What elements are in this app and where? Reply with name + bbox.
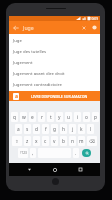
button[interactable]: p: [92, 112, 99, 122]
staticText: q: [13, 114, 16, 121]
button[interactable]: Jugement contradictoire: [9, 78, 100, 89]
staticText: LIVRE DISPONIBLE SUR AMAZON: [31, 94, 88, 99]
button[interactable]: ,: [30, 148, 36, 158]
staticText: 10:09: [90, 17, 98, 21]
staticText: c: [44, 138, 47, 145]
staticText: a: [15, 93, 18, 100]
staticText: Juge des tutelles: [13, 48, 47, 54]
button[interactable]: n: [69, 136, 76, 146]
button[interactable]: Jugement avant dire droit: [9, 67, 100, 78]
staticText: f: [45, 126, 47, 133]
button[interactable]: f: [42, 124, 49, 134]
button[interactable]: o: [83, 112, 90, 122]
button[interactable]: j: [69, 124, 76, 134]
button[interactable]: Juge: [9, 34, 100, 45]
staticText: Jugement contradictoire: [13, 81, 62, 87]
staticText: ,: [32, 150, 34, 157]
button[interactable]: r: [38, 112, 45, 122]
staticText: g: [53, 126, 56, 133]
button[interactable]: q: [11, 112, 18, 122]
button[interactable]: Clear search: [78, 21, 89, 34]
button[interactable]: m: [78, 136, 85, 146]
staticText: d: [35, 126, 38, 133]
button[interactable]: s: [24, 124, 31, 134]
staticText: l: [90, 126, 92, 133]
button[interactable]: y: [56, 112, 63, 122]
button[interactable]: Back: [9, 21, 23, 34]
staticText: p: [94, 114, 97, 121]
button[interactable]: Juge des tutelles: [9, 45, 100, 56]
staticText: ?123: [20, 151, 27, 155]
staticText: x: [35, 138, 38, 145]
staticText: a: [17, 126, 20, 133]
button[interactable]: c: [42, 136, 49, 146]
staticText: o: [85, 114, 88, 121]
button[interactable]: h: [60, 124, 67, 134]
button[interactable]: ⇧: [12, 136, 22, 146]
staticText: h: [62, 126, 65, 133]
button[interactable]: e: [29, 112, 36, 122]
button[interactable]: u: [65, 112, 72, 122]
staticText: k: [80, 126, 83, 133]
button[interactable]: l: [87, 124, 94, 134]
staticText: i: [77, 114, 79, 121]
button[interactable]: d: [33, 124, 40, 134]
button[interactable]: ⌫: [87, 136, 97, 146]
staticText: w: [22, 114, 26, 121]
staticText: m: [79, 138, 84, 145]
button[interactable]: i: [74, 112, 81, 122]
button[interactable]: a: [15, 124, 22, 134]
button[interactable]: Voice search: [89, 21, 100, 34]
staticText: z: [26, 138, 29, 145]
staticText: b: [62, 138, 65, 145]
staticText: Jugement avant dire droit: [13, 70, 65, 76]
button[interactable]: a: [9, 91, 100, 101]
button[interactable]: k: [78, 124, 85, 134]
button[interactable]: g: [51, 124, 58, 134]
staticText: t: [50, 114, 52, 121]
staticText: v: [53, 138, 56, 145]
staticText: Juge: [23, 24, 34, 31]
staticText: Juge: [13, 37, 22, 43]
button[interactable]: t: [47, 112, 54, 122]
staticText: e: [31, 114, 34, 121]
button[interactable]: b: [60, 136, 67, 146]
staticText: Jugement: [13, 59, 33, 65]
button[interactable]: .: [73, 148, 79, 158]
staticText: j: [72, 126, 74, 133]
button[interactable]: ?123: [18, 148, 28, 158]
button[interactable]: Recent apps: [75, 164, 86, 175]
staticText: .: [75, 150, 77, 157]
staticText: r: [41, 114, 43, 121]
button[interactable]: v: [51, 136, 58, 146]
button[interactable]: Jugement: [9, 56, 100, 67]
staticText: y: [58, 114, 61, 121]
button[interactable]: Hide keyboard: [24, 164, 35, 175]
staticText: u: [67, 114, 70, 121]
button[interactable]: z: [24, 136, 31, 146]
button[interactable]: w: [20, 112, 27, 122]
button[interactable]: x: [33, 136, 40, 146]
staticText: ⇧: [15, 139, 19, 144]
staticText: s: [26, 126, 29, 133]
staticText: ⌫: [89, 139, 95, 144]
button[interactable]: Home: [49, 164, 60, 175]
button[interactable]: Search: [82, 149, 91, 157]
staticText: n: [71, 138, 74, 145]
